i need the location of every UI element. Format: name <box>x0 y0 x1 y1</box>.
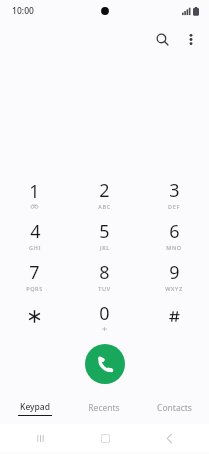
button[interactable]: 2 <box>69 174 139 215</box>
staticText: 1 <box>29 179 40 204</box>
button[interactable]: 9 <box>139 256 209 297</box>
button[interactable]: 3 <box>139 174 209 215</box>
button[interactable]: 4 <box>0 215 69 256</box>
staticText: 2 <box>99 178 110 203</box>
button[interactable]: Call <box>85 344 125 384</box>
staticText: 6 <box>169 219 180 244</box>
staticText: MNO <box>166 244 182 251</box>
staticText: 7 <box>29 260 40 285</box>
staticText: GHI <box>29 244 41 251</box>
button[interactable]: Recent apps <box>8 424 73 452</box>
button[interactable]: Search <box>147 24 177 54</box>
staticText: DEF <box>168 203 180 210</box>
button[interactable]: 1 <box>0 174 69 215</box>
button[interactable] <box>0 297 69 338</box>
button[interactable]: 7 <box>0 256 69 297</box>
button[interactable]: 8 <box>69 256 139 297</box>
staticText: ABC <box>98 203 111 210</box>
staticText: WXYZ <box>165 285 183 292</box>
staticText: 10:00 <box>12 5 34 17</box>
staticText: Recents <box>88 402 120 414</box>
staticText: 9 <box>169 260 180 285</box>
staticText: TUV <box>98 285 111 292</box>
staticText: 0 <box>99 301 110 326</box>
button[interactable]: 5 <box>69 215 139 256</box>
button[interactable]: More options <box>177 25 205 53</box>
staticText: 8 <box>99 260 110 285</box>
staticText: 4 <box>30 219 41 244</box>
button[interactable]: Recents <box>69 396 139 420</box>
staticText: 3 <box>169 178 180 203</box>
staticText: 5 <box>99 219 110 244</box>
button[interactable]: Back <box>137 424 201 452</box>
staticText: Keypad <box>20 401 50 413</box>
button[interactable] <box>139 297 209 338</box>
button[interactable]: Home <box>73 424 137 452</box>
staticText: JKL <box>100 244 110 251</box>
button[interactable]: Keypad <box>0 396 69 420</box>
button[interactable]: 6 <box>139 215 209 256</box>
staticText: Contacts <box>157 402 192 414</box>
button[interactable]: Contacts <box>139 396 209 420</box>
staticText: PQRS <box>26 285 43 292</box>
button[interactable]: 0 <box>69 297 139 338</box>
